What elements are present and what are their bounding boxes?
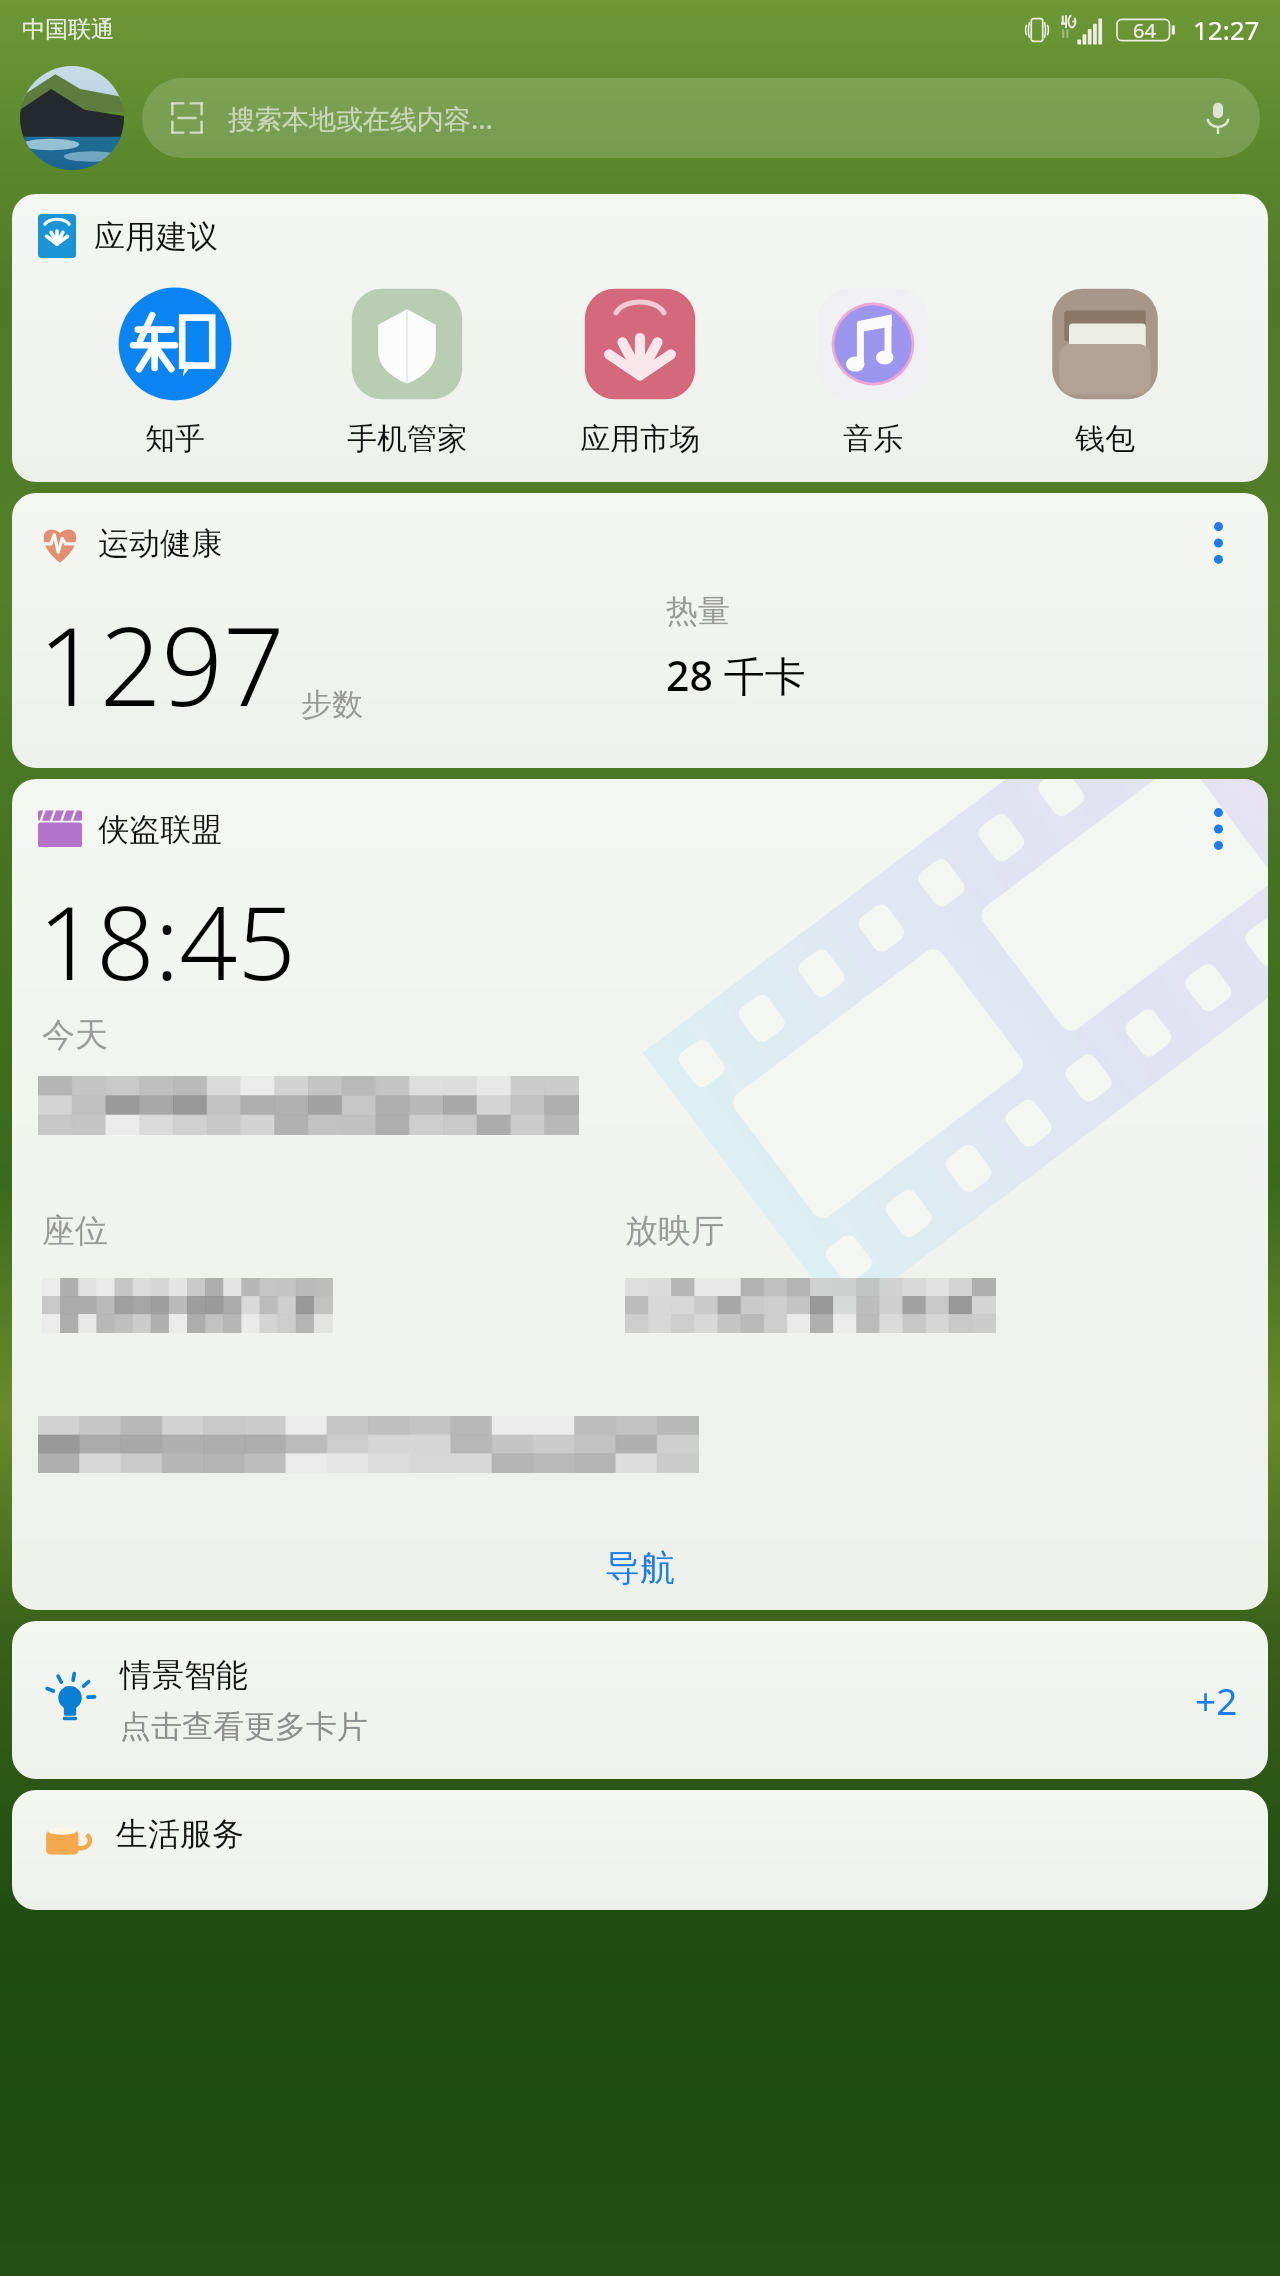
staticText: 今天 — [42, 1014, 108, 1056]
button[interactable]: 音乐 — [789, 284, 957, 458]
staticText: 情景智能 — [120, 1655, 248, 1695]
button[interactable]: More options — [1190, 515, 1246, 571]
button[interactable]: Profile — [20, 66, 124, 170]
staticText: 侠盗联盟 — [98, 810, 222, 849]
staticText: 放映厅 — [625, 1210, 724, 1252]
button[interactable]: 应用市场 — [556, 284, 724, 458]
staticText: 生活服务 — [116, 1814, 244, 1854]
staticText: 应用市场 — [580, 420, 700, 458]
button[interactable]: 导航 — [12, 1526, 1268, 1610]
staticText: 28 千卡 — [666, 647, 806, 703]
staticText: 64 — [1133, 17, 1156, 44]
staticText: 运动健康 — [98, 524, 222, 563]
staticText: +2 — [1195, 1675, 1238, 1725]
staticText: 应用建议 — [94, 217, 218, 256]
staticText: 热量 — [666, 591, 730, 631]
button[interactable]: 钱包 — [1021, 284, 1189, 458]
button[interactable]: 应用建议 — [12, 194, 1268, 482]
button[interactable]: 运动健康 — [12, 493, 1268, 768]
staticText: 12:27 — [1193, 12, 1260, 47]
staticText: 导航 — [605, 1546, 675, 1590]
staticText: 中国联通 — [22, 15, 114, 44]
button[interactable]: Voice search — [1188, 88, 1248, 148]
staticText: 音乐 — [843, 420, 903, 458]
staticText: 知乎 — [145, 420, 205, 458]
staticText: 座位 — [42, 1210, 108, 1252]
button[interactable]: 侠盗联盟 — [12, 779, 1268, 1610]
staticText: 手机管家 — [347, 420, 467, 458]
staticText: 点击查看更多卡片 — [120, 1707, 368, 1746]
button[interactable]: More options — [1190, 801, 1246, 857]
staticText: 1297 — [38, 591, 285, 738]
staticText: 步数 — [301, 685, 363, 724]
button[interactable]: 情景智能 — [12, 1621, 1268, 1779]
button[interactable]: 知乎 — [91, 284, 259, 458]
staticText: 搜索本地或在线内容... — [228, 100, 493, 137]
staticText: 18:45 — [38, 871, 296, 1010]
button[interactable]: 生活服务 — [12, 1790, 1268, 1910]
button[interactable]: 手机管家 — [323, 284, 491, 458]
staticText: 钱包 — [1075, 420, 1135, 458]
button[interactable]: 搜索本地或在线内容... — [142, 78, 1260, 158]
